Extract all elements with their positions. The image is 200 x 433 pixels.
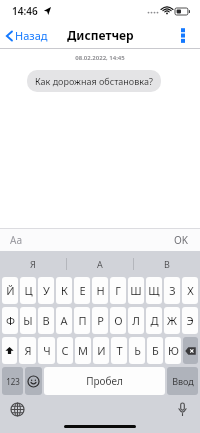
button[interactable]: Backspace (183, 337, 198, 364)
button[interactable]: Е (74, 277, 90, 304)
button[interactable]: Назад (6, 28, 48, 43)
button[interactable]: Ц (20, 277, 36, 304)
staticText: 08.02.2022, 14:45 (0, 54, 200, 62)
staticText: Й (6, 283, 15, 298)
button[interactable]: Shift (2, 337, 17, 364)
staticText: Э (186, 313, 194, 328)
staticText: С (61, 343, 69, 358)
staticText: Ш (130, 283, 142, 298)
staticText: Ч (43, 343, 51, 358)
button[interactable]: Д (146, 307, 162, 334)
staticText: Ь (134, 343, 141, 358)
staticText: Щ (148, 283, 160, 298)
button[interactable]: Ш (128, 277, 144, 304)
button[interactable]: Как дорожная обстановка? (27, 70, 161, 92)
staticText: Как дорожная обстановка? (35, 75, 153, 87)
staticText: Р (97, 313, 104, 328)
staticText: А (97, 258, 103, 270)
button[interactable]: Ввод (167, 367, 198, 395)
staticText: Х (187, 283, 194, 298)
button[interactable]: В (134, 251, 200, 277)
staticText: У (43, 283, 50, 298)
staticText: Б (152, 343, 159, 358)
button[interactable]: Emoji (25, 367, 42, 395)
staticText: Я (30, 258, 36, 270)
staticText: Д (150, 313, 159, 328)
button[interactable]: Я (19, 337, 36, 364)
staticText: Ж (167, 313, 177, 328)
staticText: М (78, 343, 88, 358)
staticText: Ввод (172, 375, 194, 387)
button[interactable]: К (56, 277, 72, 304)
staticText: 123 (6, 376, 20, 387)
staticText: В (42, 313, 50, 328)
staticText: З (169, 283, 176, 298)
button[interactable]: А (67, 251, 133, 277)
button[interactable]: Л (128, 307, 144, 334)
staticText: П (78, 313, 87, 328)
button[interactable]: А (56, 307, 72, 334)
button[interactable]: Aa (0, 233, 22, 247)
button[interactable]: OK (174, 233, 200, 247)
button[interactable]: Э (182, 307, 198, 334)
staticText: И (97, 343, 106, 358)
button[interactable]: В (38, 307, 54, 334)
button[interactable]: More options (174, 26, 192, 44)
staticText: Л (132, 313, 140, 328)
button[interactable]: 123 (2, 367, 23, 395)
button[interactable]: Ы (20, 307, 36, 334)
button[interactable]: Ф (2, 307, 18, 334)
button[interactable]: Dictation (174, 401, 190, 417)
button[interactable]: Б (147, 337, 163, 364)
staticText: Г (115, 283, 121, 298)
button[interactable]: Т (111, 337, 127, 364)
button[interactable]: Я (0, 251, 66, 277)
button[interactable]: Й (2, 277, 18, 304)
staticText: Диспетчер (67, 27, 134, 43)
staticText: 14:46 (12, 4, 38, 18)
button[interactable]: Пробел (44, 367, 165, 395)
staticText: Ф (6, 313, 15, 328)
staticText: В (164, 258, 170, 270)
staticText: Я (24, 343, 32, 358)
button[interactable]: Н (92, 277, 108, 304)
staticText: А (60, 313, 68, 328)
staticText: Ю (168, 343, 179, 358)
button[interactable]: П (74, 307, 90, 334)
button[interactable]: Ч (38, 337, 55, 364)
button[interactable]: Ж (164, 307, 180, 334)
staticText: Ы (23, 313, 33, 328)
staticText: Т (116, 343, 123, 358)
button[interactable]: З (164, 277, 180, 304)
staticText: Е (79, 283, 86, 298)
button[interactable]: Change keyboard language (9, 401, 25, 417)
staticText: Пробел (86, 374, 123, 388)
button[interactable]: Щ (146, 277, 162, 304)
staticText: К (61, 283, 68, 298)
button[interactable]: Р (92, 307, 108, 334)
button[interactable]: У (38, 277, 54, 304)
staticText: Назад (15, 28, 48, 43)
button[interactable]: И (93, 337, 109, 364)
button[interactable]: С (57, 337, 73, 364)
staticText: Ц (24, 283, 33, 298)
button[interactable]: Г (110, 277, 126, 304)
button[interactable]: М (75, 337, 91, 364)
button[interactable]: Ю (165, 337, 181, 364)
staticText: Н (96, 283, 105, 298)
button[interactable]: О (110, 307, 126, 334)
button[interactable]: Х (182, 277, 198, 304)
button[interactable]: Ь (129, 337, 145, 364)
staticText: О (114, 313, 123, 328)
